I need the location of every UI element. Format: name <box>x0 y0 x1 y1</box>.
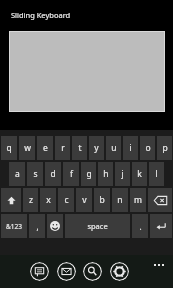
staticText: s <box>33 168 38 180</box>
staticText: v <box>82 194 87 206</box>
button[interactable]: r <box>55 136 70 160</box>
button[interactable]: u <box>106 136 121 160</box>
button[interactable]: Backspace <box>148 188 172 212</box>
staticText: u <box>111 142 117 154</box>
button[interactable]: l <box>149 162 164 186</box>
staticText: a <box>15 168 20 180</box>
button[interactable]: e <box>37 136 53 160</box>
staticText: h <box>103 168 109 180</box>
button[interactable]: o <box>140 136 155 160</box>
button[interactable]: Settings <box>110 262 129 281</box>
button[interactable]: c <box>58 188 74 212</box>
button[interactable]: Enter <box>150 214 172 238</box>
button[interactable]: m <box>130 188 146 212</box>
button[interactable]: . <box>132 214 148 238</box>
button[interactable]: q <box>1 136 17 160</box>
staticText: . <box>139 221 142 232</box>
staticText: w <box>24 142 31 154</box>
staticText: , <box>36 221 39 232</box>
staticText: l <box>155 168 158 180</box>
button[interactable]: a <box>9 162 25 186</box>
button[interactable]: b <box>94 188 110 212</box>
button[interactable]: Emoji <box>47 214 63 238</box>
staticText: Sliding Keyboard <box>11 10 71 20</box>
staticText: z <box>29 194 33 206</box>
staticText: x <box>46 194 51 206</box>
button[interactable]: p <box>157 136 172 160</box>
button[interactable]: j <box>115 162 130 186</box>
button[interactable]: k <box>132 162 147 186</box>
staticText: n <box>117 194 123 206</box>
button[interactable]: n <box>112 188 128 212</box>
button[interactable]: Shift <box>1 188 21 212</box>
staticText: k <box>137 168 142 180</box>
staticText: i <box>129 142 132 154</box>
staticText: space <box>87 221 108 231</box>
staticText: j <box>121 168 124 180</box>
button[interactable]: i <box>123 136 138 160</box>
button[interactable]: z <box>23 188 38 212</box>
button[interactable]: g <box>81 162 96 186</box>
button[interactable]: t <box>72 136 87 160</box>
staticText: y <box>94 142 99 154</box>
button[interactable]: d <box>45 162 61 186</box>
button[interactable]: &123 <box>1 214 27 238</box>
staticText: &123 <box>6 222 22 231</box>
button[interactable]: w <box>19 136 35 160</box>
button[interactable]: Mail <box>57 262 76 281</box>
button[interactable]: h <box>98 162 113 186</box>
button[interactable]: Messages <box>30 262 49 281</box>
staticText: q <box>6 142 12 154</box>
button[interactable]: Search <box>83 262 102 281</box>
staticText: b <box>99 194 105 206</box>
button[interactable]: v <box>76 188 92 212</box>
staticText: e <box>43 142 48 154</box>
button[interactable]: More options <box>151 261 167 269</box>
staticText: m <box>134 194 142 206</box>
button[interactable]: space <box>65 214 130 238</box>
button[interactable]: , <box>29 214 45 238</box>
button[interactable]: y <box>89 136 104 160</box>
staticText: d <box>50 168 56 180</box>
staticText: p <box>162 142 168 154</box>
button[interactable]: f <box>63 162 79 186</box>
staticText: t <box>78 142 82 154</box>
button[interactable]: s <box>27 162 43 186</box>
staticText: g <box>86 168 92 180</box>
staticText: c <box>64 194 69 206</box>
staticText: r <box>61 142 65 154</box>
staticText: o <box>145 142 151 154</box>
staticText: f <box>70 168 73 180</box>
button[interactable]: x <box>40 188 56 212</box>
